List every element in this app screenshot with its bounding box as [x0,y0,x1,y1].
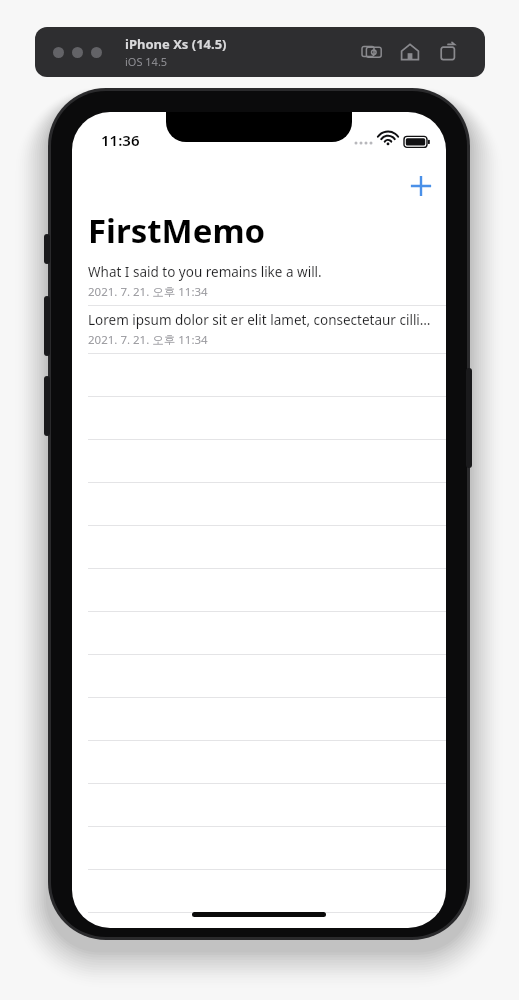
button[interactable] [72,526,446,569]
staticText: iPhone Xs (14.5) [125,35,227,53]
button[interactable] [72,655,446,698]
button[interactable] [72,870,446,913]
staticText: 2021. 7. 21. 오후 11:34 [88,284,208,300]
staticText: Lorem ipsum dolor sit er elit lamet, con… [88,311,438,329]
staticText: 2021. 7. 21. 오후 11:34 [88,332,208,348]
button[interactable]: Add memo [402,167,440,205]
staticText: iOS 14.5 [125,54,168,69]
button[interactable]: Rotate [433,37,463,67]
button[interactable] [72,913,446,928]
staticText: FirstMemo [88,208,266,253]
button[interactable] [72,784,446,827]
button[interactable] [72,483,446,526]
button[interactable] [72,741,446,784]
button[interactable]: Lorem ipsum dolor sit er elit lamet, con… [72,306,446,354]
staticText: 11:36 [101,130,140,150]
button[interactable]: What I said to you remains like a will. [72,258,446,306]
button[interactable] [72,569,446,612]
button[interactable] [72,827,446,870]
staticText: What I said to you remains like a will. [88,263,322,281]
button[interactable] [72,354,446,397]
button[interactable]: Screenshot [357,37,387,67]
button[interactable] [72,612,446,655]
button[interactable]: Home [395,37,425,67]
button[interactable] [91,47,102,58]
button[interactable] [72,440,446,483]
button[interactable] [72,698,446,741]
button[interactable] [72,397,446,440]
button[interactable] [53,47,64,58]
button[interactable] [72,47,83,58]
